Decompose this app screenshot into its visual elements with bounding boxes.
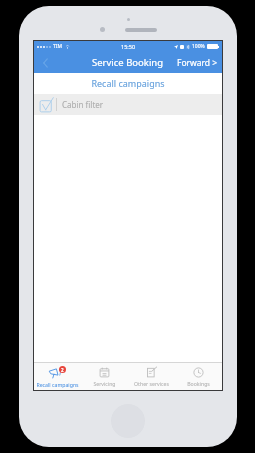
button[interactable]: 2 <box>34 363 81 390</box>
button[interactable]: Servicing <box>81 363 128 390</box>
button[interactable]: Forward > <box>173 52 222 73</box>
staticText: Recall campaigns <box>34 77 222 89</box>
staticText: Service Booking <box>92 56 164 69</box>
staticText: Other services <box>134 380 169 387</box>
button[interactable]: Bookings <box>175 363 222 390</box>
staticText: TIM <box>53 43 63 50</box>
button[interactable]: Other services <box>128 363 175 390</box>
staticText: Forward > <box>177 57 218 69</box>
button[interactable]: Back <box>34 52 56 73</box>
staticText: 100% <box>192 43 205 50</box>
staticText: Recall campaigns <box>36 381 79 388</box>
staticText: 15:50 <box>121 43 136 50</box>
staticText: Bookings <box>187 380 210 387</box>
button[interactable]: Cabin filter <box>34 94 222 115</box>
staticText: Cabin filter <box>62 99 104 110</box>
staticText: 2 <box>61 367 64 373</box>
staticText: Servicing <box>93 380 116 387</box>
